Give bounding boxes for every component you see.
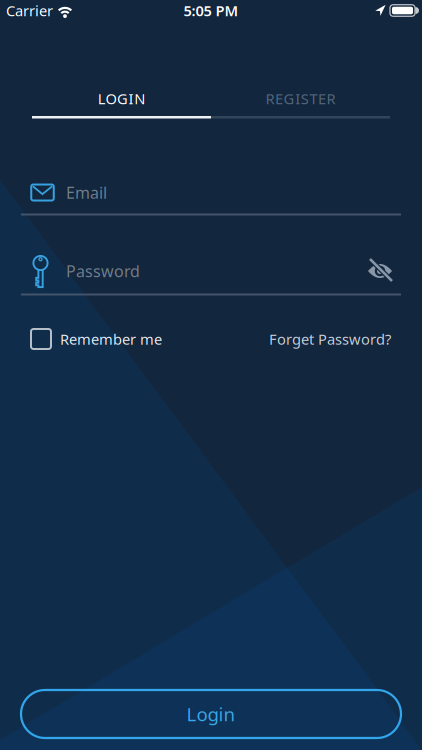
staticText: Login: [186, 702, 235, 726]
staticText: LOGIN: [98, 89, 145, 108]
staticText: Email: [66, 182, 107, 203]
button[interactable]: Remember me: [31, 329, 162, 349]
staticText: Password: [66, 260, 140, 282]
button[interactable]: Login: [0, 690, 422, 738]
button[interactable]: Show password: [366, 257, 394, 285]
staticText: Carrier: [6, 1, 53, 20]
staticText: Forget Password?: [269, 329, 391, 349]
staticText: Remember me: [60, 329, 162, 349]
button[interactable]: Forget Password?: [269, 329, 391, 349]
staticText: REGISTER: [265, 89, 336, 108]
staticText: 5:05 PM: [183, 1, 238, 20]
button[interactable]: LOGIN: [32, 89, 211, 108]
button[interactable]: REGISTER: [211, 89, 390, 108]
